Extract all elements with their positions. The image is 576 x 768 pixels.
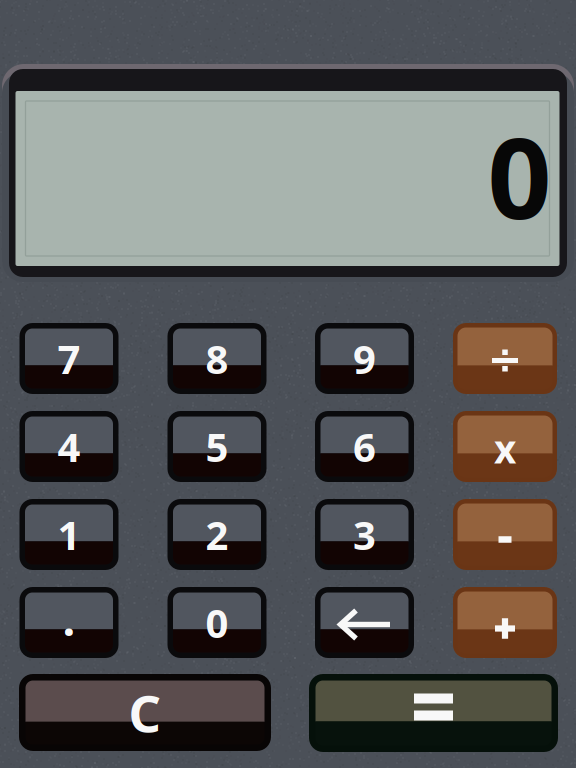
button[interactable]: 6 [315, 411, 414, 482]
button[interactable]: 1 [19, 499, 118, 570]
button[interactable]: 0 [167, 587, 266, 658]
staticText: 0 [487, 101, 551, 250]
button[interactable]: 7 [19, 323, 118, 394]
staticText: 0 [205, 596, 228, 649]
button[interactable]: Equals [309, 674, 558, 752]
staticText: 2 [205, 508, 228, 561]
button[interactable]: Minus [453, 499, 557, 570]
staticText: 9 [353, 332, 376, 385]
button[interactable]: Plus [453, 587, 557, 658]
button[interactable]: 2 [167, 499, 266, 570]
button[interactable]: 8 [167, 323, 266, 394]
button[interactable]: 3 [315, 499, 414, 570]
button[interactable]: 5 [167, 411, 266, 482]
button[interactable]: . [19, 587, 118, 658]
staticText: 7 [57, 332, 80, 385]
staticText: 6 [353, 420, 376, 473]
staticText: C [128, 679, 161, 746]
button[interactable]: C [19, 674, 271, 751]
staticText: 3 [353, 508, 376, 561]
button[interactable]: Divide [453, 323, 557, 394]
staticText: . [62, 588, 75, 649]
staticText: 5 [205, 420, 228, 473]
staticText: x [494, 423, 516, 474]
button[interactable]: 9 [315, 323, 414, 394]
button[interactable]: x [453, 411, 557, 482]
staticText: 1 [57, 508, 80, 561]
staticText: 4 [57, 420, 80, 473]
staticText: 8 [205, 332, 228, 385]
button[interactable]: 4 [19, 411, 118, 482]
button[interactable]: Backspace [315, 587, 414, 658]
